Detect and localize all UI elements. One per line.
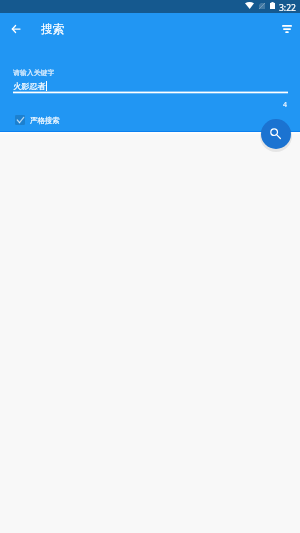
button[interactable]: Back [6, 19, 26, 39]
staticText: 请输入关键字 [13, 68, 55, 77]
staticText: 火影忍者 [13, 81, 46, 91]
button[interactable]: Search [261, 119, 291, 149]
button[interactable]: Keyword input [13, 65, 288, 95]
staticText: 3:22 [266, 2, 296, 14]
button[interactable]: Filter [277, 19, 297, 39]
staticText: 严格搜索 [30, 116, 60, 125]
staticText: 搜索 [41, 22, 65, 37]
staticText: 4 [257, 100, 287, 110]
button[interactable]: 严格搜索 [15, 115, 60, 125]
